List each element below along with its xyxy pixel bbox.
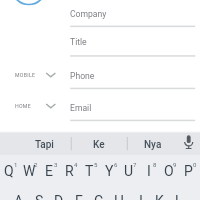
button[interactable]: [0, 156, 20, 184]
staticText: G: [94, 193, 104, 200]
button[interactable]: Phone: [70, 66, 195, 85]
button[interactable]: Nya: [131, 139, 175, 151]
staticText: HOME: [15, 103, 31, 109]
staticText: 0: [193, 161, 197, 168]
button[interactable]: [139, 156, 159, 184]
button[interactable]: [149, 184, 169, 200]
staticText: A: [14, 193, 24, 200]
staticText: 4: [74, 161, 78, 168]
button[interactable]: [179, 156, 199, 184]
staticText: W: [23, 163, 36, 179]
button[interactable]: [129, 184, 149, 200]
staticText: Nya: [144, 139, 162, 151]
button[interactable]: Company: [70, 4, 195, 23]
staticText: 9: [173, 161, 177, 168]
button[interactable]: [79, 156, 99, 184]
staticText: 3: [54, 161, 58, 168]
staticText: Q: [4, 163, 14, 179]
staticText: Company: [70, 9, 107, 19]
staticText: 7: [133, 161, 137, 168]
staticText: H: [114, 193, 124, 200]
button[interactable]: [10, 184, 30, 200]
staticText: 6: [114, 161, 118, 168]
staticText: Ke: [93, 139, 105, 151]
staticText: J: [135, 193, 143, 200]
button[interactable]: [89, 184, 109, 200]
button[interactable]: [159, 156, 179, 184]
button[interactable]: Tapi: [22, 139, 66, 151]
staticText: 8: [153, 161, 157, 168]
staticText: Phone: [70, 71, 95, 81]
button[interactable]: Ke: [77, 139, 121, 151]
button[interactable]: [29, 184, 49, 200]
button[interactable]: HOME: [15, 97, 59, 114]
staticText: L: [175, 193, 183, 200]
button[interactable]: [19, 156, 39, 184]
staticText: T: [85, 163, 94, 179]
staticText: 5: [94, 161, 98, 168]
staticText: 1: [14, 161, 18, 168]
button[interactable]: Title: [70, 32, 195, 51]
staticText: P: [184, 163, 193, 179]
staticText: Tapi: [35, 139, 54, 151]
staticText: O: [164, 163, 174, 179]
staticText: I: [147, 163, 151, 179]
staticText: MOBILE: [15, 72, 36, 78]
button[interactable]: Email: [70, 98, 195, 117]
staticText: D: [54, 193, 64, 200]
button[interactable]: [169, 184, 189, 200]
button[interactable]: [119, 156, 139, 184]
staticText: F: [75, 193, 83, 200]
staticText: U: [124, 163, 134, 179]
staticText: 2: [34, 161, 38, 168]
staticText: Y: [105, 163, 114, 179]
button[interactable]: [109, 184, 129, 200]
staticText: S: [35, 193, 44, 200]
button[interactable]: MOBILE: [15, 66, 59, 83]
button[interactable]: [59, 156, 79, 184]
staticText: Title: [70, 37, 87, 47]
staticText: K: [155, 193, 164, 200]
button[interactable]: [99, 156, 119, 184]
staticText: R: [65, 163, 74, 179]
staticText: E: [45, 163, 53, 179]
button[interactable]: [49, 184, 69, 200]
staticText: Email: [70, 103, 92, 113]
button[interactable]: [69, 184, 89, 200]
button[interactable]: [39, 156, 59, 184]
